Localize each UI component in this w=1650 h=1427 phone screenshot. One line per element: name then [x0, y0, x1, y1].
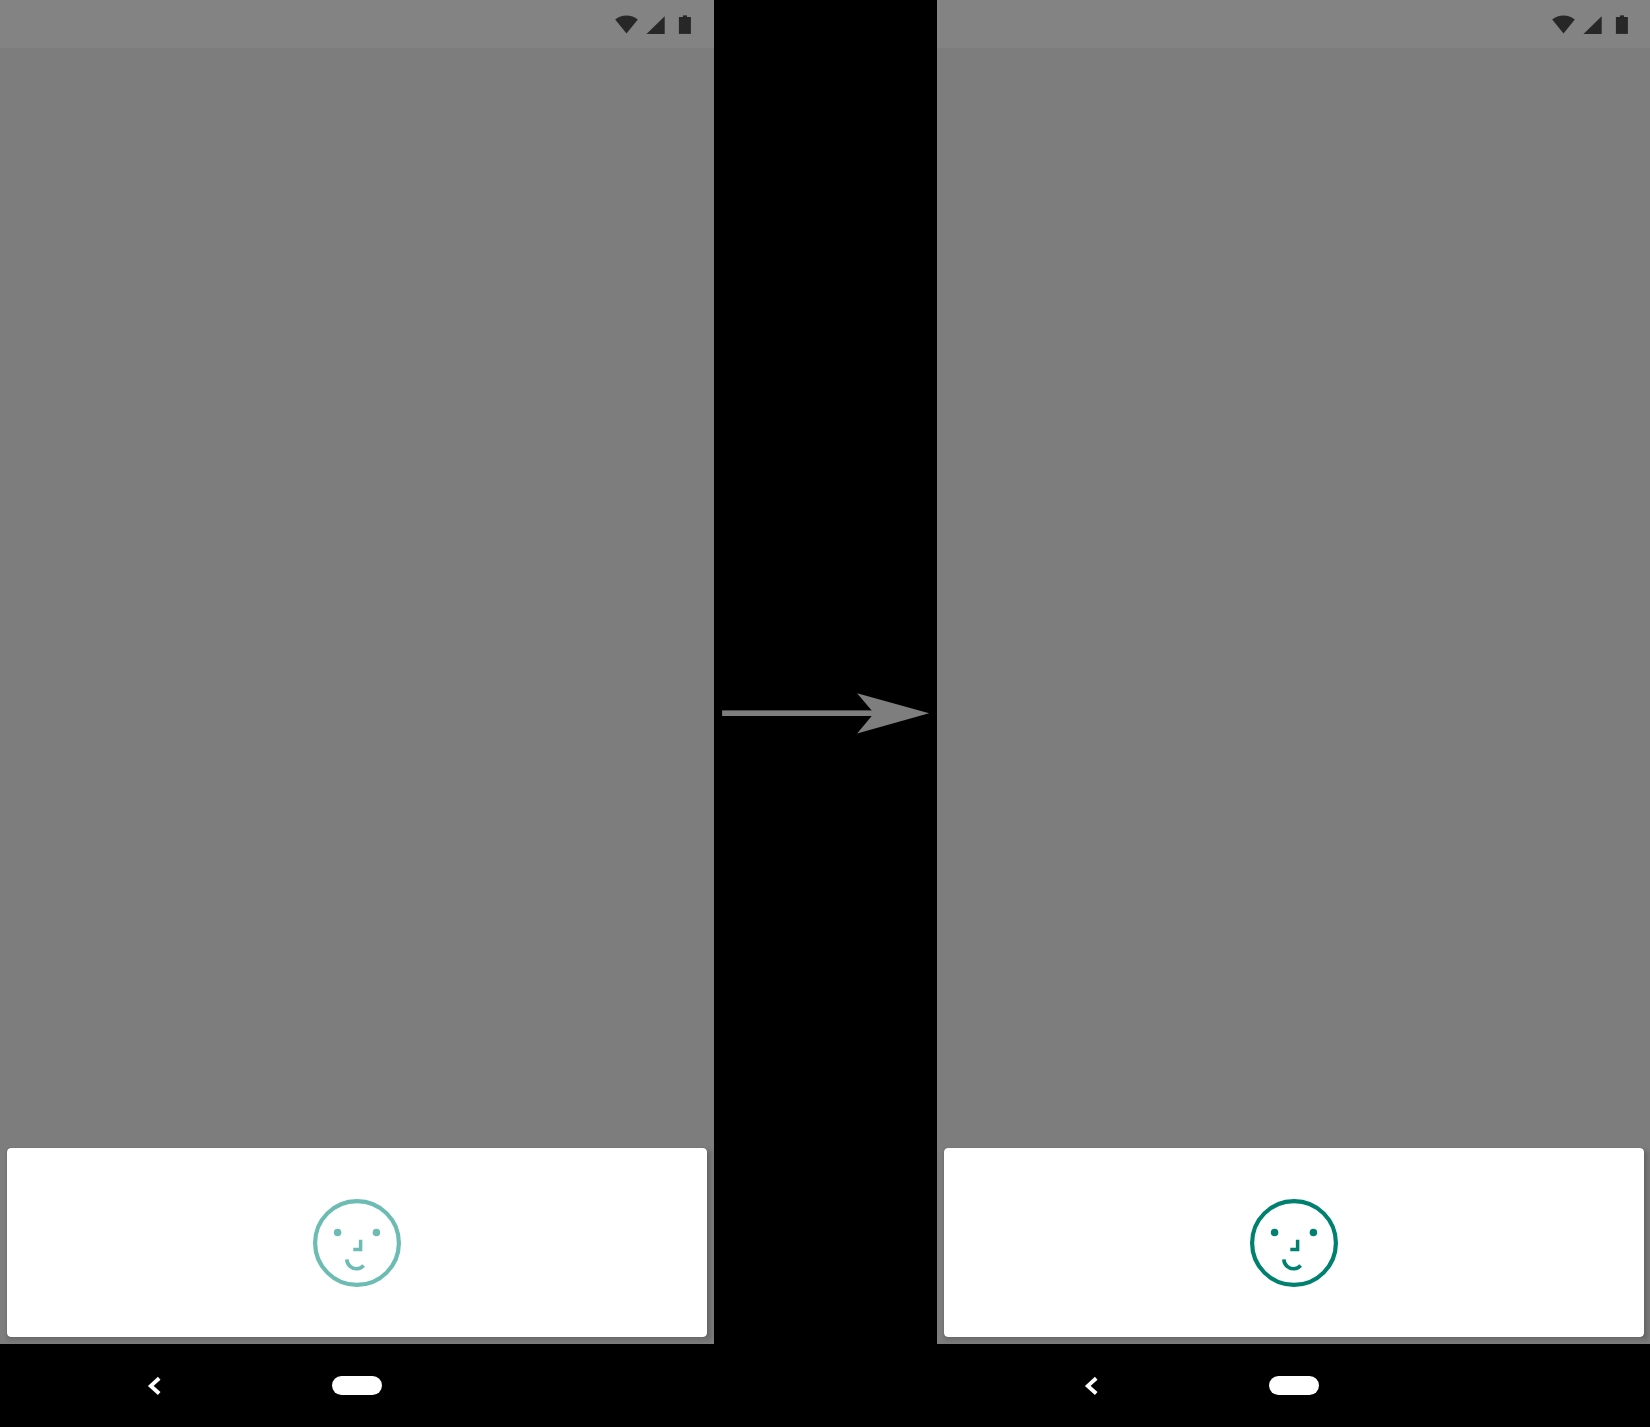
button[interactable]: Profile avatar card — [944, 1148, 1644, 1337]
button[interactable]: Back — [130, 1366, 170, 1406]
button[interactable]: Home — [1269, 1376, 1319, 1395]
button[interactable]: Back — [1067, 1366, 1107, 1406]
button[interactable]: Profile avatar card — [7, 1148, 707, 1337]
button[interactable]: Home — [332, 1376, 382, 1395]
